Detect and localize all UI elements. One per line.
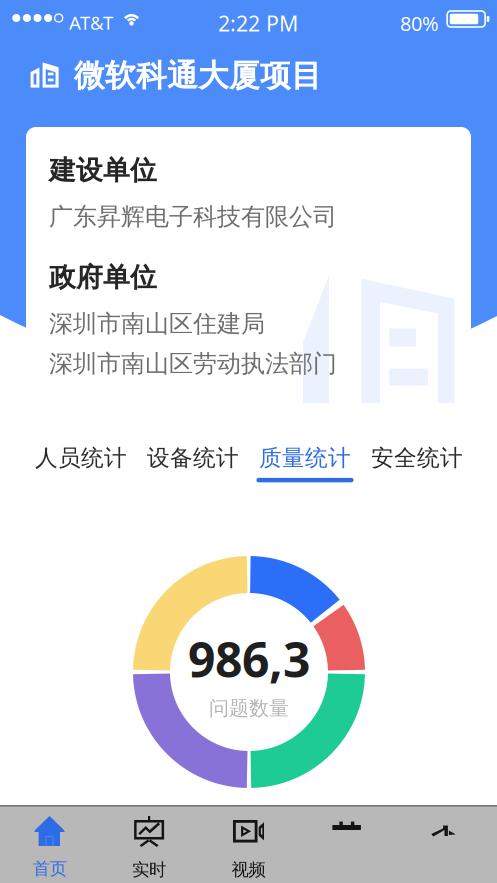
staticText: 微软科通大厦项目 bbox=[74, 57, 322, 95]
staticText: 安全统计 bbox=[371, 444, 463, 472]
staticText: 80% bbox=[400, 10, 439, 37]
staticText: 首页 bbox=[33, 858, 67, 879]
staticText: 建设单位 bbox=[49, 154, 157, 187]
staticText: 深圳市南山区劳动执法部门 bbox=[49, 349, 337, 378]
button[interactable]: 视频 bbox=[199, 805, 298, 883]
button[interactable]: 安全统计 bbox=[371, 436, 463, 492]
staticText: 政府单位 bbox=[49, 261, 157, 294]
staticText: 实时 bbox=[132, 859, 166, 880]
staticText: 986,3 bbox=[188, 627, 310, 691]
button[interactable]: 实时 bbox=[99, 805, 199, 883]
button[interactable]: 人员统计 bbox=[35, 436, 127, 492]
staticText: 广东昇辉电子科技有限公司 bbox=[49, 202, 337, 231]
staticText: 设备统计 bbox=[147, 444, 239, 472]
staticText: 2:22 PM bbox=[218, 9, 298, 37]
button[interactable]: 设备统计 bbox=[147, 436, 239, 492]
button[interactable]: Project bbox=[24, 54, 66, 96]
button[interactable]: 首页 bbox=[0, 805, 99, 883]
staticText: 问题数量 bbox=[209, 696, 289, 721]
staticText: 人员统计 bbox=[35, 444, 127, 472]
button[interactable]: More bbox=[398, 805, 497, 883]
staticText: 质量统计 bbox=[259, 444, 351, 472]
staticText: AT&T bbox=[69, 10, 113, 35]
button[interactable]: Schedule bbox=[298, 805, 398, 883]
staticText: 视频 bbox=[231, 859, 265, 880]
staticText: 深圳市南山区住建局 bbox=[49, 309, 265, 338]
button[interactable]: 质量统计 bbox=[259, 436, 351, 492]
